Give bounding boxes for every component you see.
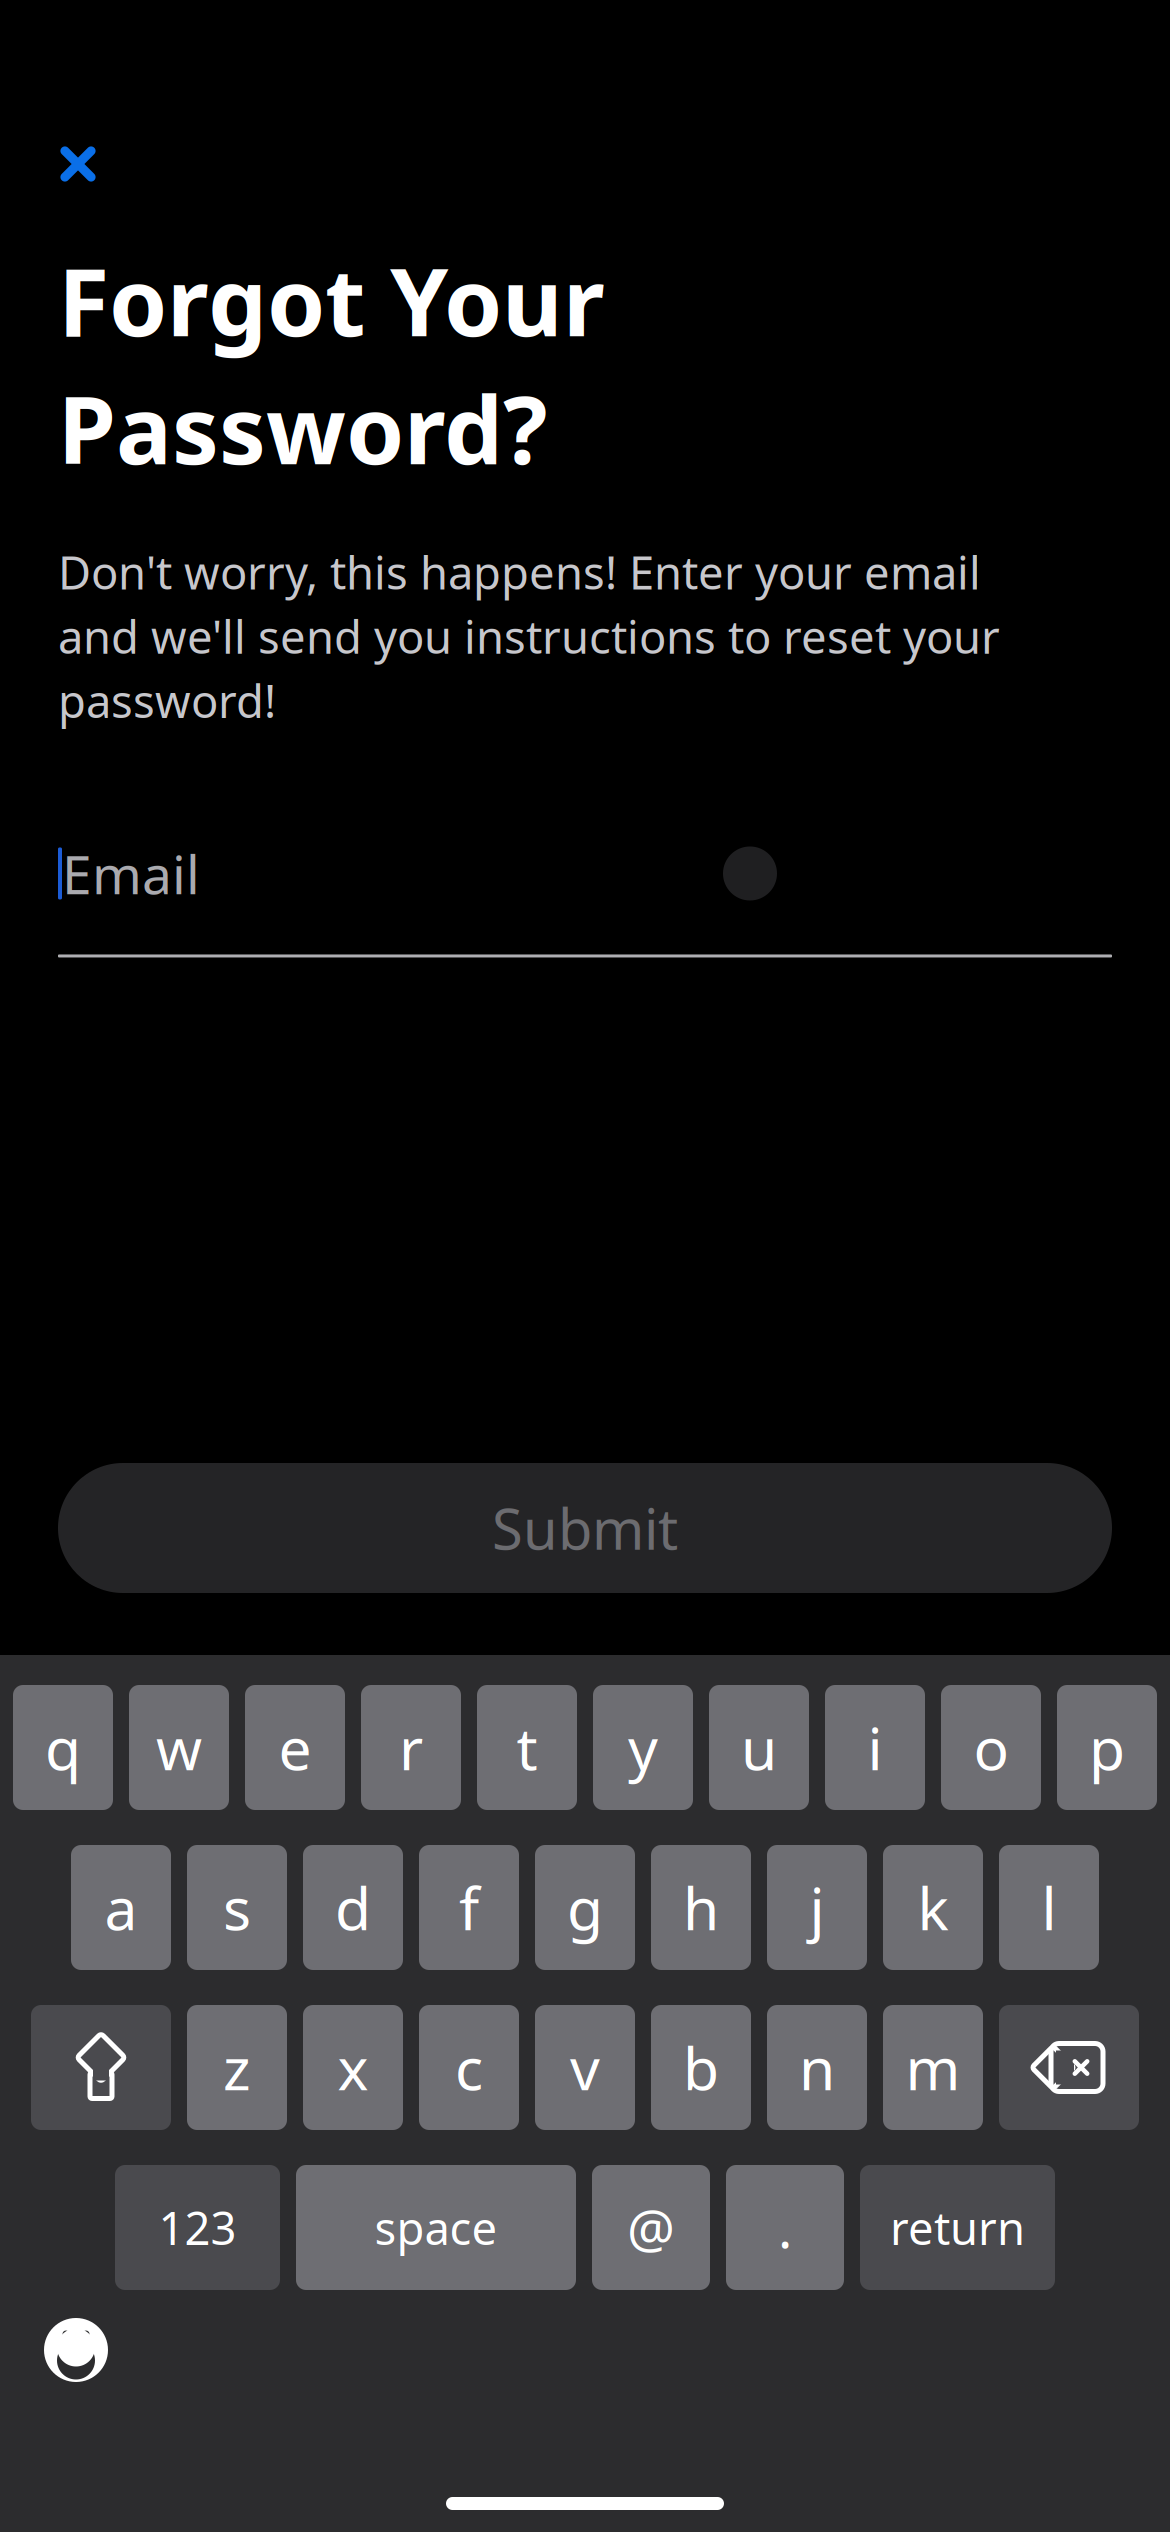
button[interactable]: Shift <box>31 2005 171 2130</box>
button[interactable]: w <box>129 1685 229 1810</box>
button[interactable]: k <box>883 1845 983 1970</box>
staticText: o <box>973 1708 1008 1786</box>
button[interactable]: r <box>361 1685 461 1810</box>
staticText: t <box>516 1708 537 1786</box>
staticText: return <box>890 2197 1025 2258</box>
button[interactable]: x <box>303 2005 403 2130</box>
button[interactable]: q <box>13 1685 113 1810</box>
button[interactable]: b <box>651 2005 751 2130</box>
staticText: Forgot Your Password? <box>58 238 605 490</box>
button[interactable]: p <box>1057 1685 1157 1810</box>
button[interactable]: return <box>860 2165 1055 2290</box>
staticText: space <box>374 2197 497 2258</box>
staticText: c <box>455 2028 483 2106</box>
button[interactable]: z <box>187 2005 287 2130</box>
staticText: a <box>104 1868 137 1946</box>
button[interactable]: l <box>999 1845 1099 1970</box>
staticText: 123 <box>158 2197 236 2258</box>
button[interactable]: Close <box>36 122 120 206</box>
button[interactable]: Delete <box>999 2005 1139 2130</box>
button[interactable]: space <box>296 2165 576 2290</box>
button[interactable]: s <box>187 1845 287 1970</box>
staticText: j <box>809 1868 824 1946</box>
staticText: e <box>278 1708 311 1786</box>
staticText: r <box>399 1708 423 1786</box>
button[interactable]: n <box>767 2005 867 2130</box>
button[interactable]: i <box>825 1685 925 1810</box>
button[interactable]: c <box>419 2005 519 2130</box>
staticText: Don't worry, this happens! Enter your em… <box>58 542 1000 730</box>
button[interactable]: m <box>883 2005 983 2130</box>
button[interactable]: Submit <box>58 1463 1112 1593</box>
button[interactable]: o <box>941 1685 1041 1810</box>
button[interactable]: u <box>709 1685 809 1810</box>
button[interactable]: e <box>245 1685 345 1810</box>
staticText: h <box>683 1868 719 1946</box>
staticText: b <box>683 2028 719 2106</box>
staticText: n <box>799 2028 835 2106</box>
staticText: m <box>905 2028 960 2106</box>
button[interactable]: y <box>593 1685 693 1810</box>
staticText: f <box>459 1868 479 1946</box>
button[interactable]: j <box>767 1845 867 1970</box>
button[interactable]: d <box>303 1845 403 1970</box>
button[interactable]: t <box>477 1685 577 1810</box>
button[interactable]: a <box>71 1845 171 1970</box>
staticText: z <box>223 2028 251 2106</box>
button[interactable]: h <box>651 1845 751 1970</box>
button[interactable]: 123 <box>115 2165 280 2290</box>
staticText: d <box>335 1868 371 1946</box>
staticText: l <box>1041 1868 1056 1946</box>
staticText: x <box>337 2028 368 2106</box>
staticText: g <box>567 1868 603 1946</box>
staticText: @ <box>627 2192 675 2263</box>
staticText: s <box>223 1868 251 1946</box>
button[interactable]: f <box>419 1845 519 1970</box>
button[interactable]: g <box>535 1845 635 1970</box>
staticText: q <box>45 1708 81 1786</box>
staticText: v <box>570 2028 600 2106</box>
button[interactable]: Emoji <box>38 2312 114 2388</box>
staticText: w <box>156 1708 202 1786</box>
staticText: Email <box>62 838 200 909</box>
staticText: p <box>1089 1708 1125 1786</box>
staticText: y <box>628 1708 658 1786</box>
staticText: k <box>917 1868 948 1946</box>
button[interactable]: v <box>535 2005 635 2130</box>
staticText: . <box>778 2192 792 2263</box>
button[interactable]: @ <box>592 2165 710 2290</box>
staticText: Submit <box>492 1491 678 1565</box>
staticText: i <box>867 1708 882 1786</box>
staticText: u <box>741 1708 777 1786</box>
button[interactable]: . <box>726 2165 844 2290</box>
